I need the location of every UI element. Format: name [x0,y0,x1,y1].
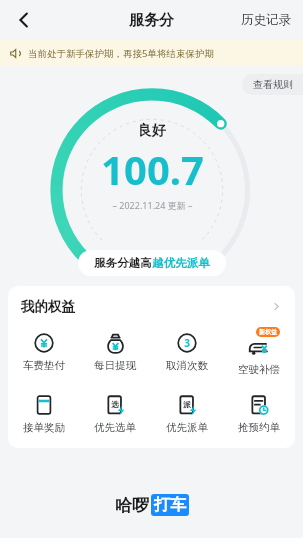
staticText: 选 [111,400,119,409]
button[interactable]: 新权益 [223,328,295,376]
button[interactable]: 选 [79,390,151,434]
staticText: 哈啰 [115,495,149,516]
staticText: 每日提现 [94,359,136,372]
staticText: 空驶补偿 [238,363,280,376]
staticText: 优先选单 [94,421,136,434]
staticText: 车费垫付 [23,359,65,372]
staticText: 我的权益 [21,298,75,315]
staticText: 优先派单 [166,421,208,434]
staticText: 查看规则 [253,78,293,91]
button[interactable]: 派 [151,390,223,434]
staticText: – 2022.11.24 更新 – [112,199,193,211]
staticText: 取消次数 [166,359,208,372]
staticText: 3 [184,336,190,350]
staticText: 新权益 [259,328,277,336]
button[interactable]: 我的权益 [8,298,295,315]
staticText: 接单奖励 [23,421,65,434]
staticText: 100.7 [101,142,204,196]
staticText: 服务分越高 [94,256,152,270]
button[interactable]: 接单奖励 [8,390,79,434]
staticText: 良好 [138,122,166,140]
button[interactable]: 每日提现 [79,328,151,372]
button[interactable]: 抢预约单 [223,390,295,434]
button[interactable]: 3 [151,328,223,372]
staticText: 历史记录 [241,12,291,28]
staticText: 派 [183,400,191,409]
button[interactable]: 当前处于新手保护期，再接5单将结束保护期 [0,40,303,66]
staticText: 打车 [154,495,186,515]
staticText: 当前处于新手保护期，再接5单将结束保护期 [28,47,214,60]
button[interactable]: 服务分越高 [78,250,226,276]
staticText: 越优先派单 [152,256,210,270]
staticText: 服务分 [129,11,174,30]
button[interactable]: 历史记录 [229,4,303,36]
button[interactable]: 车费垫付 [8,328,79,372]
button[interactable]: 查看规则 [242,74,303,95]
staticText: 抢预约单 [238,421,280,434]
button[interactable]: Back [6,2,42,38]
